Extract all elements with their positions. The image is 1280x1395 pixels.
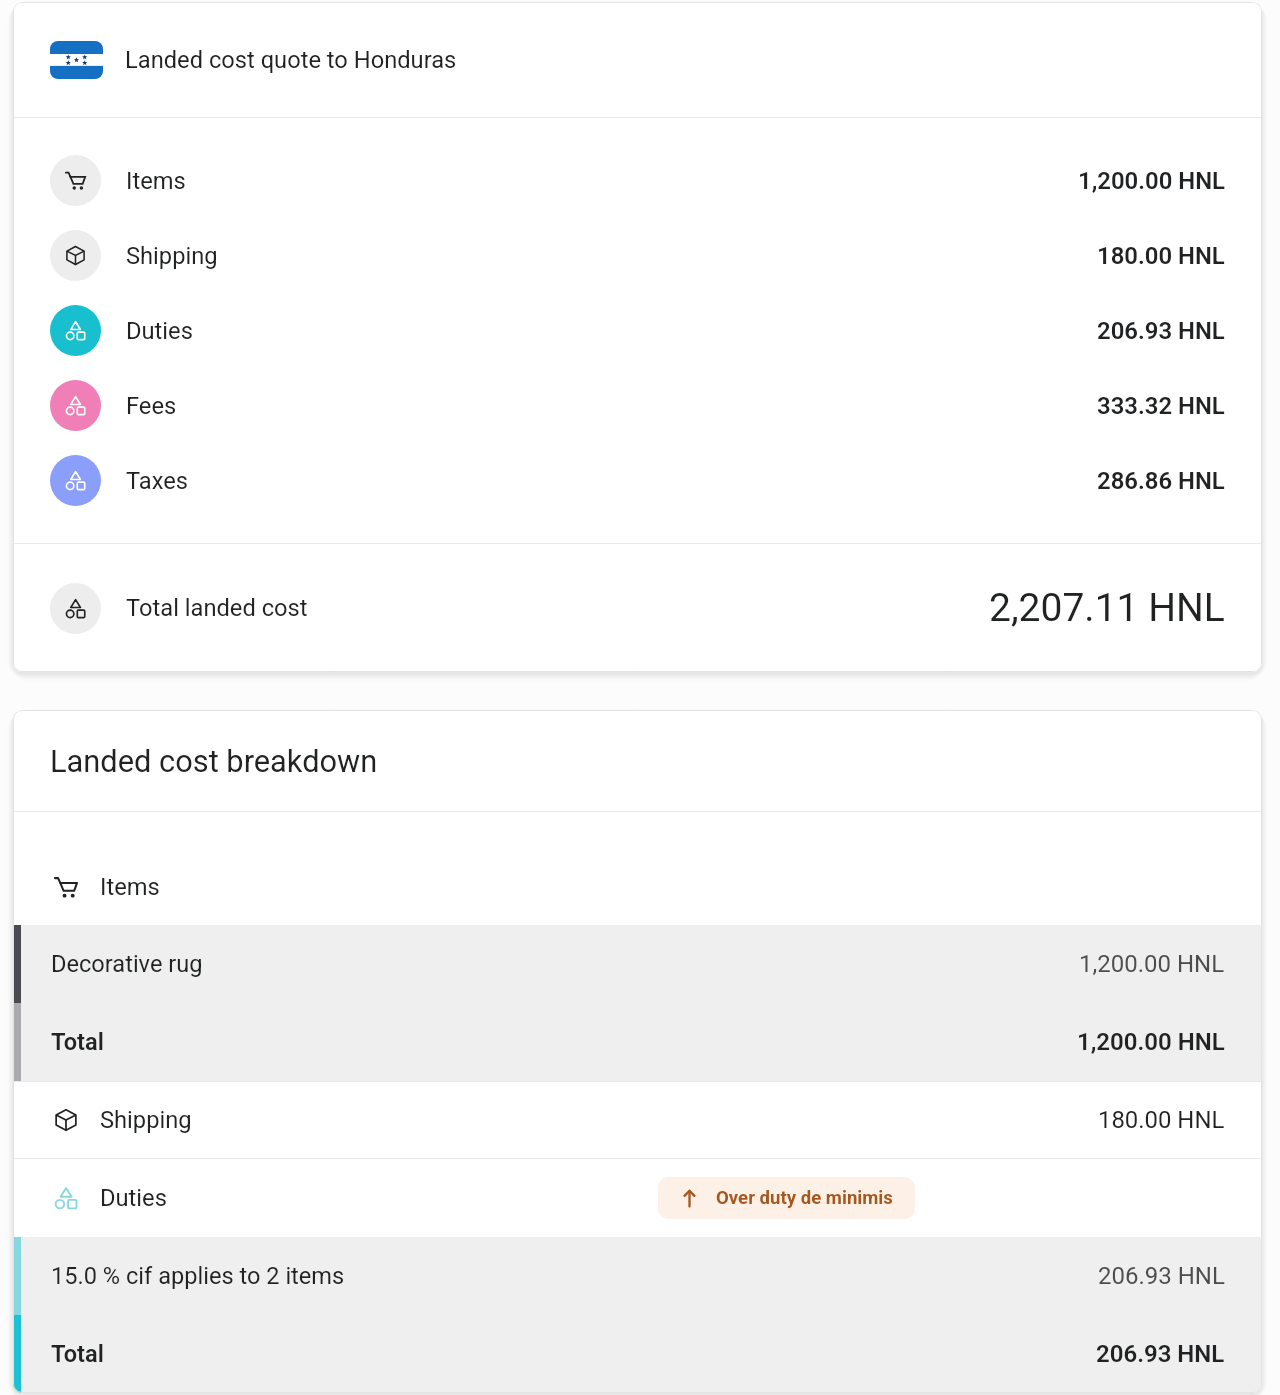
button[interactable]: Fees (13, 368, 1262, 443)
staticText: Landed cost breakdown (50, 743, 378, 779)
staticText: Fees (126, 392, 177, 420)
staticText: Taxes (126, 467, 189, 495)
staticText: 206.93 HNL (1098, 1262, 1225, 1290)
staticText: Shipping (126, 242, 218, 270)
staticText: Total landed cost (126, 594, 308, 622)
staticText: 206.93 HNL (1096, 1340, 1225, 1368)
staticText: 1,200.00 HNL (1078, 167, 1225, 195)
button[interactable]: Taxes (13, 443, 1262, 518)
staticText: Items (100, 873, 160, 901)
staticText: Over duty de minimis (716, 1187, 893, 1209)
staticText: Shipping (100, 1106, 192, 1134)
button[interactable]: Shipping (13, 1082, 1262, 1158)
staticText: 2,207.11 HNL (989, 585, 1225, 631)
button[interactable]: Decorative rug (13, 925, 1262, 1003)
staticText: Landed cost quote to Honduras (125, 46, 457, 74)
button[interactable]: Shipping (13, 218, 1262, 293)
staticText: Total (51, 1340, 104, 1368)
staticText: 180.00 HNL (1097, 242, 1225, 270)
staticText: 1,200.00 HNL (1077, 1028, 1225, 1056)
staticText: 333.32 HNL (1097, 392, 1225, 420)
button[interactable]: Total (13, 1315, 1262, 1393)
button[interactable]: Items (13, 143, 1262, 218)
staticText: 1,200.00 HNL (1079, 950, 1225, 978)
other: Honduras flag (50, 41, 103, 79)
staticText: Total (51, 1028, 104, 1056)
button[interactable]: 15.0 % cif applies to 2 items (13, 1237, 1262, 1315)
button[interactable]: Duties (13, 293, 1262, 368)
staticText: Items (126, 167, 186, 195)
button[interactable]: Total (13, 1003, 1262, 1081)
staticText: 206.93 HNL (1097, 317, 1225, 345)
staticText: Duties (100, 1184, 167, 1212)
staticText: Decorative rug (51, 950, 203, 978)
staticText: 180.00 HNL (1098, 1106, 1225, 1134)
staticText: 286.86 HNL (1097, 467, 1225, 495)
staticText: Duties (126, 317, 193, 345)
button[interactable]: Items (13, 812, 1262, 925)
staticText: 15.0 % cif applies to 2 items (51, 1262, 345, 1290)
button[interactable]: Honduras flag (13, 2, 1262, 117)
button[interactable]: Total landed cost (13, 544, 1262, 672)
button[interactable]: Duties (13, 1159, 1262, 1237)
